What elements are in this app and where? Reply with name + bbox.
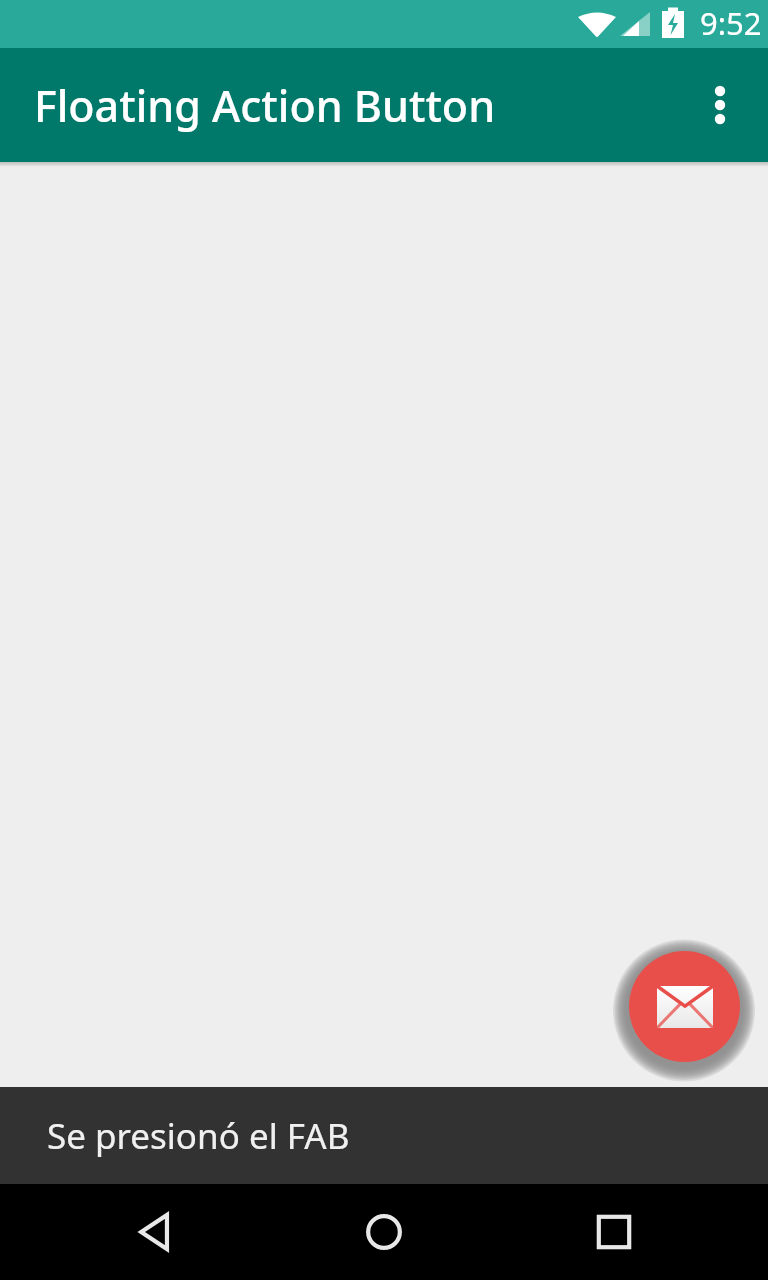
button[interactable]: Se presionó el FAB bbox=[0, 1087, 768, 1184]
button[interactable]: Home bbox=[309, 1184, 459, 1280]
staticText: 9:52 bbox=[700, 2, 762, 44]
button[interactable]: Back bbox=[80, 1184, 230, 1280]
staticText: Floating Action Button bbox=[34, 76, 496, 135]
button[interactable]: More options bbox=[672, 48, 768, 162]
button[interactable]: Send email bbox=[629, 951, 740, 1062]
button[interactable]: Recent apps bbox=[539, 1184, 689, 1280]
staticText: Se presionó el FAB bbox=[47, 1112, 350, 1160]
